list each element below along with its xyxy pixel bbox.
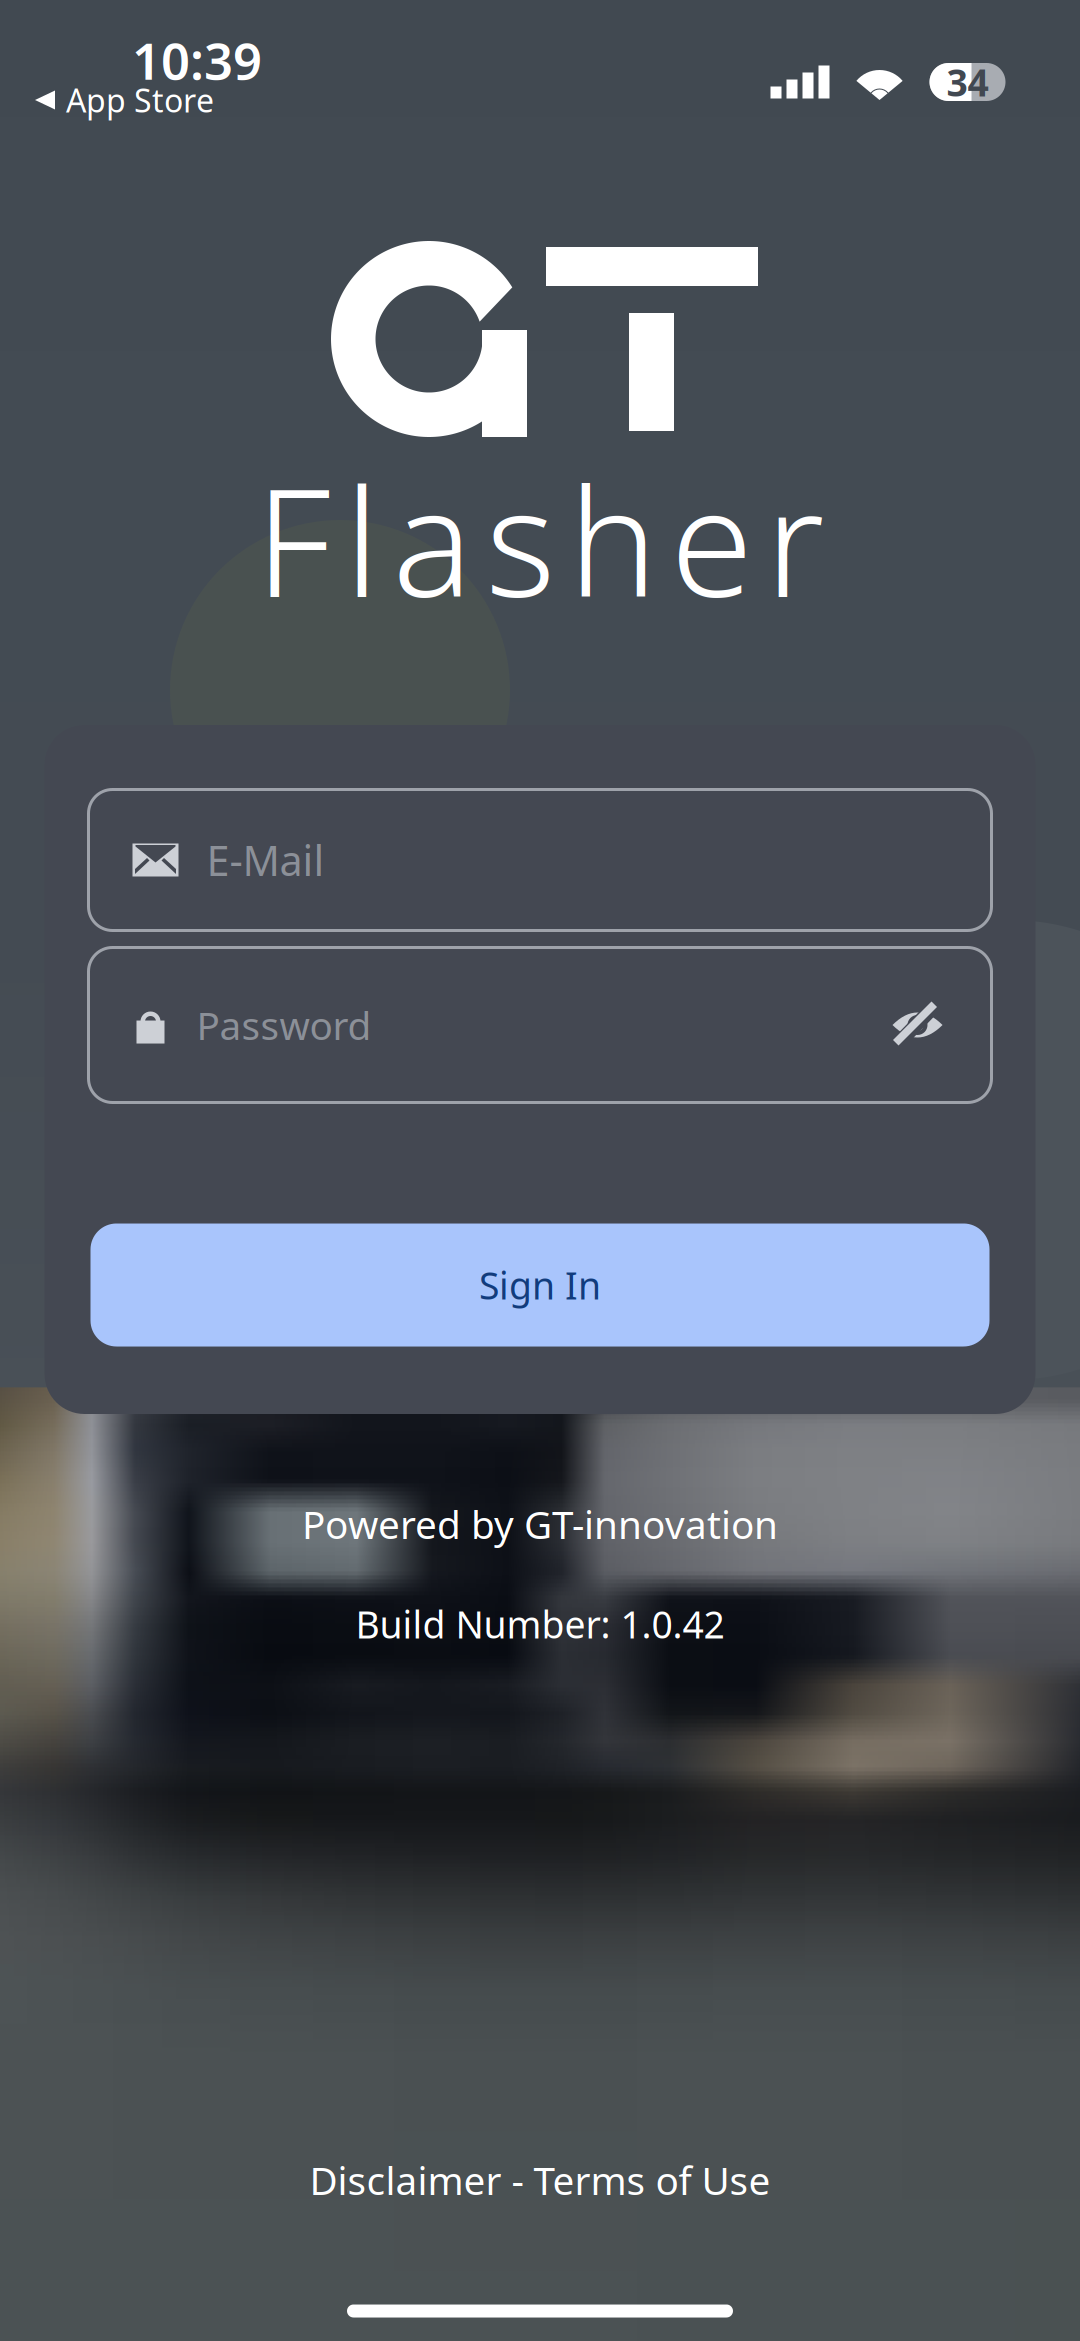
button[interactable]: Disclaimer - Terms of Use (190, 2145, 890, 2215)
staticText: E-Mail (206, 833, 324, 887)
staticText: Flasher (255, 440, 824, 638)
button[interactable]: Sign In (90, 1223, 989, 1346)
staticText: App Store (66, 79, 214, 121)
staticText: 10:39 (132, 26, 262, 94)
button[interactable]: Show password (891, 1008, 943, 1042)
staticText: Disclaimer - Terms of Use (309, 2154, 770, 2206)
staticText: Sign In (479, 1260, 601, 1310)
staticText: Password (196, 999, 371, 1051)
staticText: Powered by GT-innovation (302, 1498, 778, 1550)
staticText: Build Number: 1.0.42 (355, 1599, 724, 1649)
staticText: 34 (946, 57, 988, 107)
